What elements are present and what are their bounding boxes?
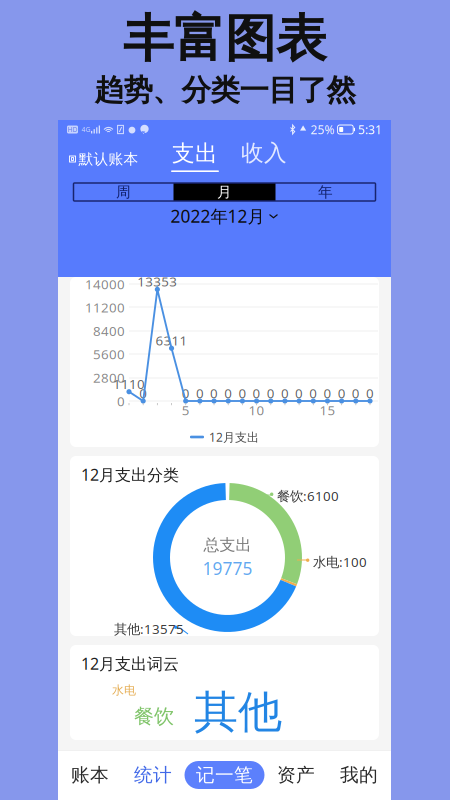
button[interactable]: 记一笔 [184,761,264,789]
staticText: 我的 [340,763,378,786]
staticText: 0 [139,384,147,402]
staticText: 0 [210,384,218,402]
staticText: 统计 [134,763,172,786]
staticText: 8400 [93,322,125,340]
staticText: 年 [318,183,333,201]
staticText: 12月支出词云 [81,653,179,674]
staticText: 0 [253,384,261,402]
staticText: 0 [281,384,289,402]
staticText: 其他:13575 [114,620,184,638]
staticText: 0 [338,384,346,402]
staticText: 水电:100 [313,553,367,571]
staticText: 0 [366,384,374,402]
staticText: 资产 [277,763,315,786]
staticText: 2022年12月 [170,204,264,227]
staticText: 2800 [93,369,125,386]
staticText: 周 [116,183,131,201]
staticText: 12月支出 [209,429,259,445]
button[interactable]: 2022年12月 [58,201,391,231]
staticText: 总支出 [203,535,251,555]
staticText: 4G [81,125,90,134]
staticText: 趋势、分类一目了然 [94,72,355,108]
staticText: HD [67,125,77,134]
button[interactable]: 我的 [327,750,390,800]
staticText: 0 [267,384,275,402]
staticText: 0 [238,384,246,402]
staticText: 其他 [194,685,282,739]
staticText: 13353 [137,273,177,290]
button[interactable]: 资产 [264,750,327,800]
staticText: 0 [309,384,317,402]
staticText: 0 [224,384,232,402]
staticText: 10 [249,401,265,419]
staticText: 12月支出分类 [81,464,179,485]
staticText: 餐饮 [134,704,174,729]
button[interactable]: 支出 [171,138,219,172]
staticText: 默认账本 [78,150,138,168]
staticText: 5:31 [358,121,382,137]
staticText: 11200 [85,298,125,316]
button[interactable]: 周 [73,183,173,201]
staticText: 月 [217,183,232,201]
staticText: 0 [117,392,125,410]
staticText: 5600 [93,345,125,363]
staticText: 0 [196,384,204,402]
staticText: 丰富图表 [123,8,327,70]
button[interactable]: 收入 [242,137,286,173]
staticText: 19775 [202,557,252,580]
staticText: 1110 [113,375,145,393]
staticText: 记一笔 [196,763,253,786]
button[interactable]: 统计 [121,750,184,800]
staticText: 餐饮:6100 [277,487,339,505]
button[interactable]: 年 [275,183,375,201]
staticText: 0 [323,384,331,402]
staticText: 0 [352,384,360,402]
staticText: 支出 [172,140,218,167]
staticText: 水电 [112,683,136,698]
staticText: 14000 [85,275,125,293]
staticText: 6311 [155,331,187,349]
staticText: 账本 [71,763,109,786]
staticText: 25% [311,121,335,137]
staticText: 0 [295,384,303,402]
button[interactable]: 账本 [58,750,121,800]
staticText: 5 [182,401,190,419]
button[interactable]: 默认账本 [58,138,138,172]
staticText: 0 [182,384,190,402]
staticText: 收入 [241,139,287,167]
staticText: 15 [319,401,335,419]
button[interactable]: 月 [173,183,275,201]
